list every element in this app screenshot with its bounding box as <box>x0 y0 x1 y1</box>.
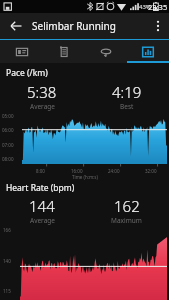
staticText: 166 <box>3 227 11 233</box>
button[interactable]: Laps <box>85 40 127 63</box>
staticText: 06:00 <box>2 127 14 133</box>
staticText: 4:19 <box>112 82 142 102</box>
button[interactable]: Back <box>0 13 32 39</box>
staticText: Time (h:m:s) <box>72 174 98 180</box>
staticText: Average <box>30 216 55 225</box>
staticText: 162 <box>114 196 140 216</box>
staticText: Average <box>30 102 55 111</box>
staticText: 24:00 <box>108 168 120 174</box>
staticText: Maximum <box>111 216 142 225</box>
staticText: 32:00 <box>145 168 157 174</box>
staticText: 08:00 <box>2 156 14 162</box>
button[interactable]: More options <box>147 13 169 39</box>
staticText: 115 <box>3 288 11 294</box>
button[interactable]: Charts <box>127 40 169 63</box>
staticText: 16:00 <box>71 168 83 174</box>
staticText: 8:00 <box>36 168 45 174</box>
staticText: 144 <box>29 196 55 216</box>
staticText: Best <box>120 102 134 111</box>
button[interactable]: Summary <box>0 40 43 63</box>
staticText: 07:00 <box>2 142 14 148</box>
staticText: 05:00 <box>2 113 14 119</box>
staticText: 23:35 <box>148 2 168 12</box>
staticText: 5:38 <box>27 82 57 102</box>
staticText: Heart Rate (bpm) <box>6 182 75 194</box>
staticText: Pace (/km) <box>6 67 48 79</box>
button[interactable]: Details <box>43 40 85 63</box>
staticText: 140 <box>3 258 11 264</box>
staticText: 43% <box>139 3 151 11</box>
staticText: Selimbar Running <box>32 19 147 33</box>
